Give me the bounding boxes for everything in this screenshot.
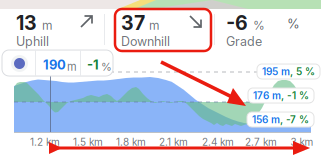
staticText: -6 [226,11,248,35]
staticText: % [253,18,265,32]
button[interactable]: 156 m [247,112,314,127]
button[interactable]: 176 m [248,88,314,103]
staticText: 13 [16,11,37,35]
staticText: 2.7 km [245,136,277,148]
staticText: Uphill [16,34,49,49]
staticText: , -1 % [281,89,309,102]
staticText: 190 [43,57,66,73]
button[interactable]: Downhill [190,16,202,28]
staticText: m [42,18,53,32]
staticText: Downhill [121,34,170,49]
staticText: -1 [87,57,99,73]
staticText: 176 m [253,89,281,102]
staticText: % [287,16,300,32]
staticText: , 5 % [290,65,315,78]
staticText: , -7 % [280,113,309,126]
staticText: 1.5 km [73,136,103,148]
staticText: 1.2 km [30,136,60,148]
staticText: 156 m [252,113,280,126]
button[interactable]: Uphill [81,16,93,28]
staticText: 2.1 km [159,136,188,148]
staticText: 37 [121,11,145,35]
staticText: 3 km [290,136,313,148]
staticText: % [101,60,112,73]
staticText: 1.8 km [116,136,146,148]
staticText: m [149,18,160,32]
staticText: m [67,60,77,73]
staticText: 2.4 km [202,136,234,148]
button[interactable]: 195 m [257,64,320,79]
staticText: Grade [226,34,262,49]
button[interactable]: 190 [2,50,113,76]
staticText: 195 m [262,65,290,78]
